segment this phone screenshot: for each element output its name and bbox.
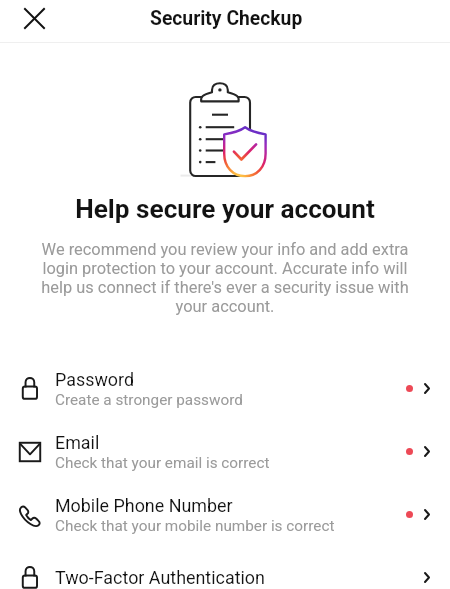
staticText: Create a stronger password [55, 391, 243, 409]
staticText: Password [55, 369, 135, 390]
staticText: Two-Factor Authentication [55, 567, 265, 588]
staticText: Security Checkup [150, 7, 303, 30]
button[interactable]: Close [11, 0, 57, 39]
staticText: We recommend you review your info and ad… [38, 240, 412, 316]
staticText: Check that your email is correct [55, 454, 270, 472]
staticText: Check that your mobile number is correct [55, 517, 335, 535]
button[interactable]: Email [0, 420, 450, 483]
staticText: Mobile Phone Number [55, 495, 233, 516]
button[interactable]: Mobile Phone Number [0, 483, 450, 546]
staticText: Email [55, 432, 100, 453]
staticText: Help secure your account [0, 194, 450, 225]
button[interactable]: Password [0, 357, 450, 420]
button[interactable]: Two-Factor Authentication [0, 546, 450, 589]
